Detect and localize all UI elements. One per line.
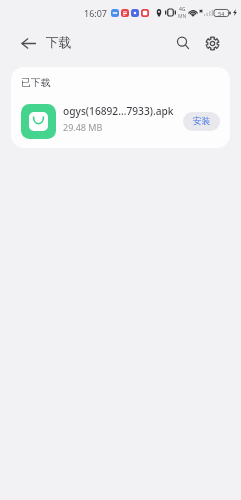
staticText: 29.48 MB <box>63 121 103 133</box>
button[interactable]: ogys(16892…7933).apk <box>11 96 230 146</box>
button[interactable]: Settings <box>198 29 226 57</box>
button[interactable]: 安装 <box>183 112 220 131</box>
staticText: 安装 <box>193 116 211 127</box>
button[interactable]: Back <box>14 29 42 57</box>
staticText: 54 <box>218 10 225 17</box>
staticText: 16:07 <box>84 7 108 19</box>
staticText: 已下载 <box>21 77 51 89</box>
button[interactable]: Search <box>169 29 197 57</box>
staticText: 下载 <box>46 35 72 51</box>
staticText: 4G <box>179 6 186 13</box>
staticText: ogys(16892…7933).apk <box>63 104 174 118</box>
staticText: MN <box>178 13 187 20</box>
